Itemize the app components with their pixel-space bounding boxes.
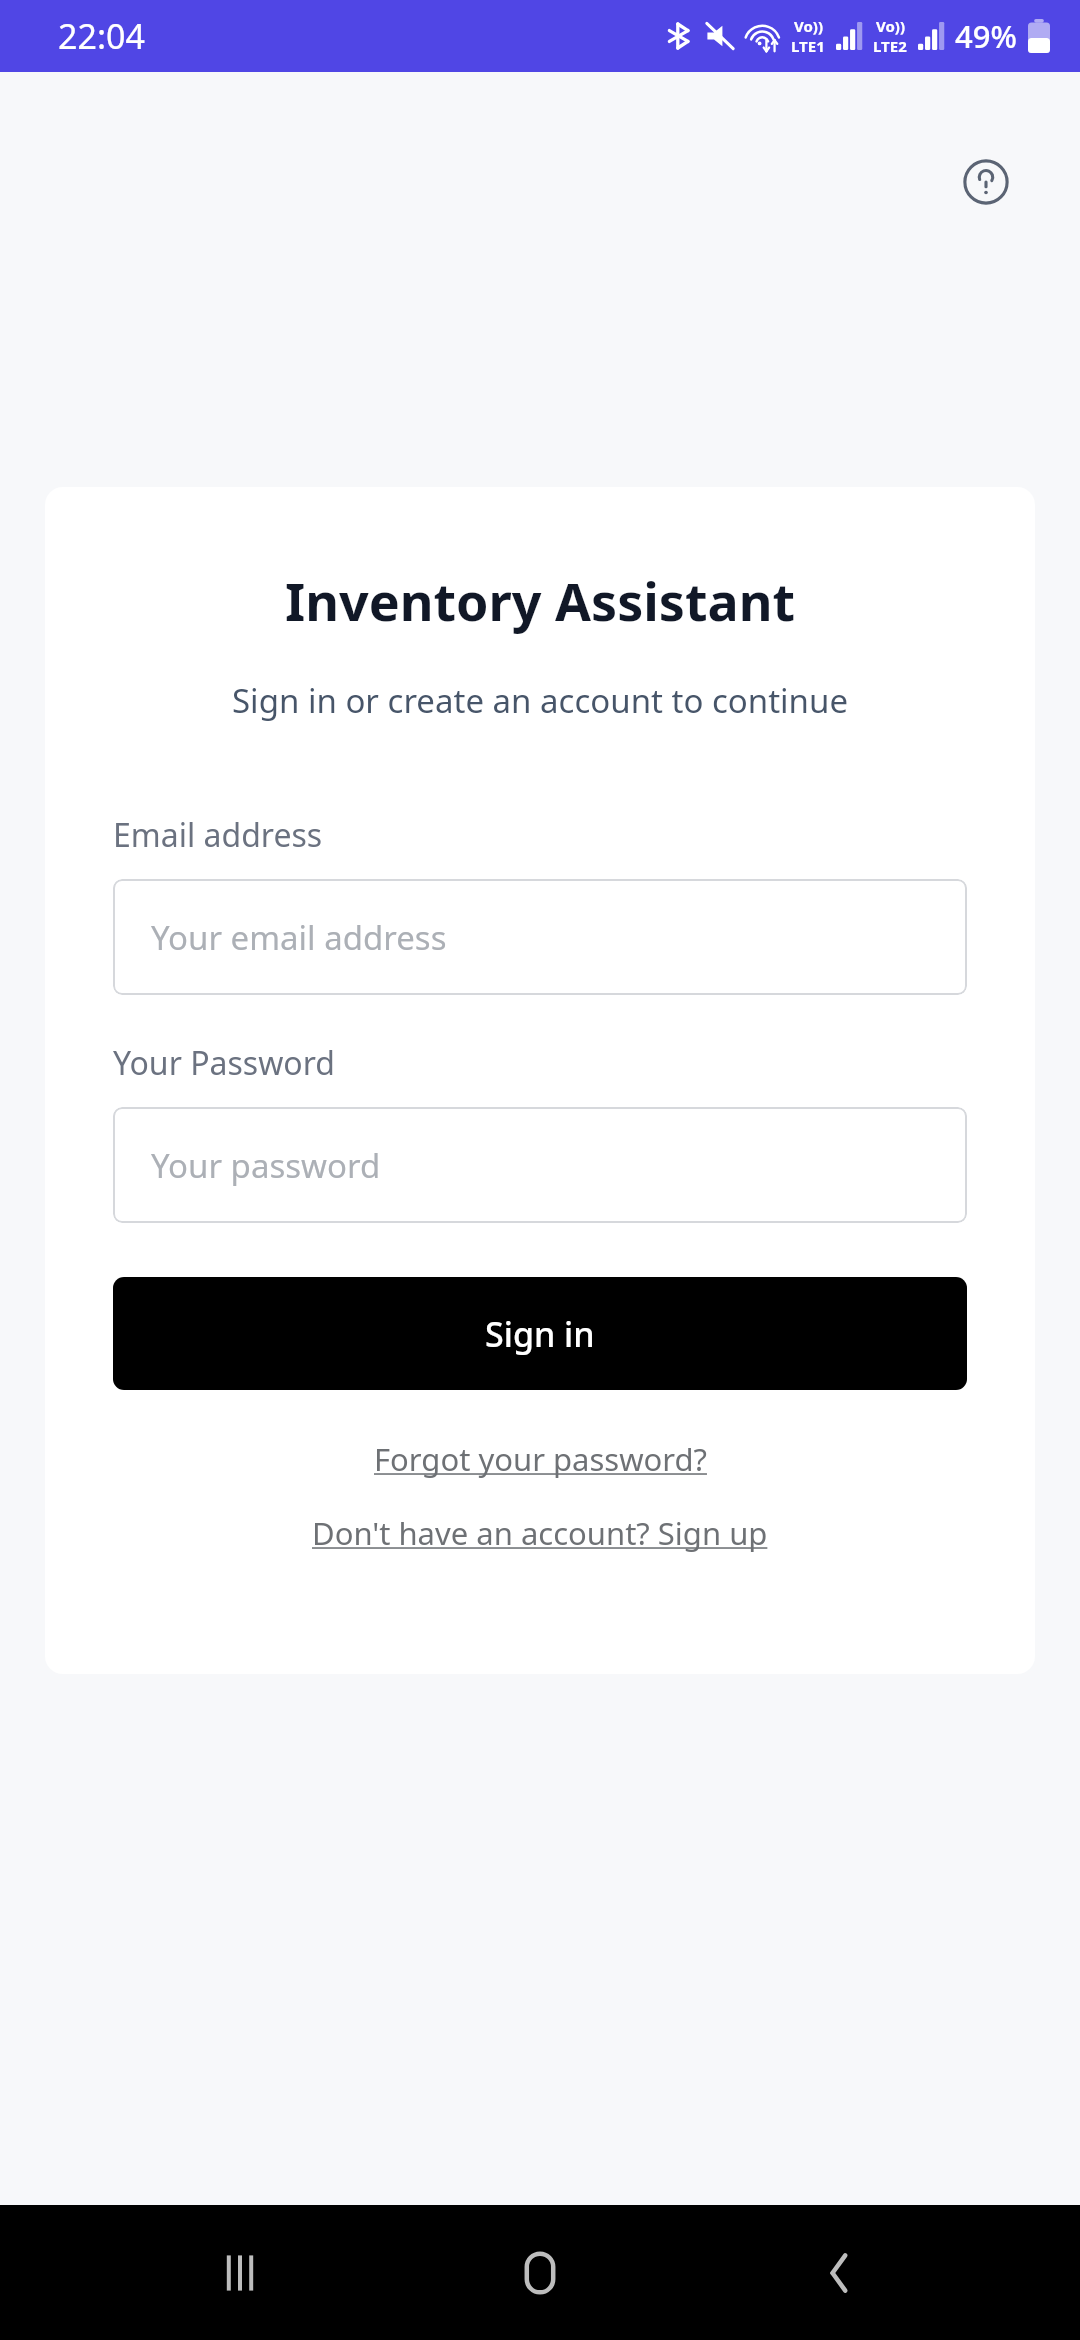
button[interactable]: Recents — [180, 2213, 300, 2333]
staticText: Forgot your password? — [374, 1438, 707, 1480]
staticText: Vo)) — [876, 16, 905, 36]
staticText: Sign in or create an account to continue — [45, 678, 1035, 723]
staticText: LTE1 — [791, 36, 825, 56]
button[interactable]: Sign in — [113, 1277, 967, 1390]
button[interactable]: Forgot your password? — [113, 1438, 967, 1480]
button[interactable]: Help — [962, 158, 1010, 206]
staticText: Don't have an account? Sign up — [312, 1512, 768, 1554]
staticText: 22:04 — [58, 13, 145, 59]
button[interactable]: Your email address — [113, 879, 967, 995]
staticText: Your Password — [113, 1041, 335, 1085]
button[interactable]: Back — [780, 2213, 900, 2333]
button[interactable]: Home — [480, 2213, 600, 2333]
staticText: Sign in — [485, 1311, 595, 1357]
staticText: Your email address — [151, 915, 447, 960]
button[interactable]: Don't have an account? Sign up — [113, 1512, 967, 1554]
staticText: Email address — [113, 813, 323, 857]
staticText: Your password — [151, 1143, 381, 1188]
staticText: Vo)) — [794, 16, 823, 36]
staticText: LTE2 — [873, 36, 907, 56]
staticText: Inventory Assistant — [45, 565, 1035, 636]
staticText: 49% — [955, 15, 1017, 57]
button[interactable]: Your password — [113, 1107, 967, 1223]
